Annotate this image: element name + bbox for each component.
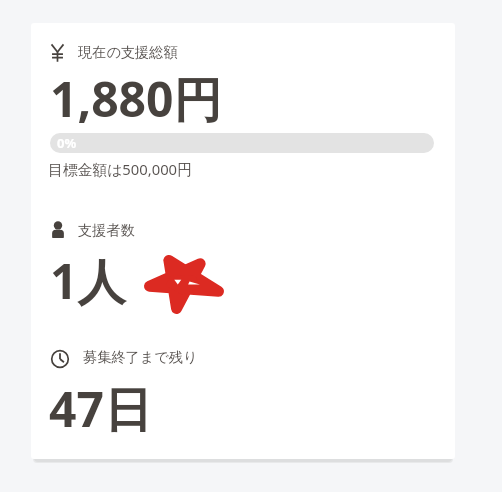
- other: Backers: [51, 221, 65, 238]
- staticText: 1,880円: [50, 66, 222, 132]
- staticText: 現在の支援総額: [78, 43, 178, 61]
- staticText: 47日: [49, 376, 152, 442]
- button[interactable]: Amount raised: [41, 33, 445, 203]
- staticText: 0%: [57, 134, 77, 152]
- button[interactable]: Backers: [41, 213, 445, 333]
- staticText: 目標金額は500,000円: [48, 159, 192, 179]
- staticText: 支援者数: [78, 221, 135, 239]
- other: Highlighted: [144, 255, 224, 314]
- staticText: 募集終了まで残り: [83, 348, 198, 366]
- other: Amount raised: [51, 44, 64, 62]
- staticText: 1人: [50, 248, 126, 314]
- button[interactable]: Time remaining: [41, 348, 445, 458]
- other: Time remaining: [51, 350, 69, 368]
